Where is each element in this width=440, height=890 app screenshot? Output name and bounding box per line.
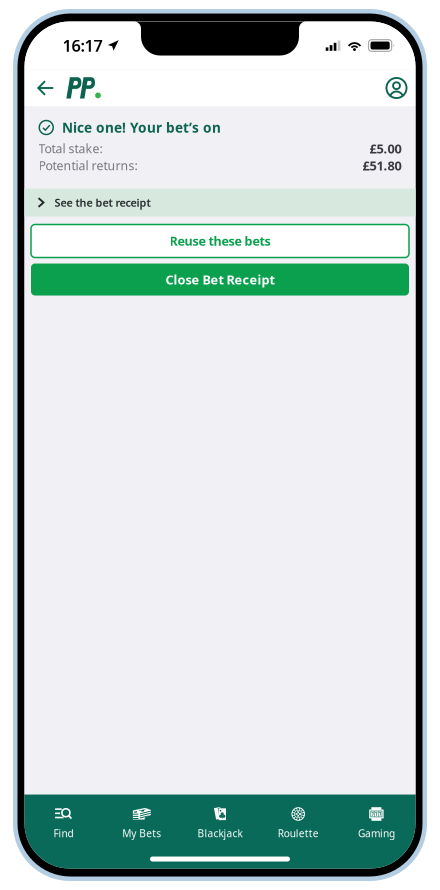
staticText: Potential returns: xyxy=(38,157,137,174)
staticText: Nice one! Your bet’s on xyxy=(62,118,221,137)
button[interactable]: See the bet receipt xyxy=(24,188,415,216)
button[interactable]: Reuse these bets xyxy=(31,224,409,257)
staticText: Close Bet Receipt xyxy=(165,271,274,288)
staticText: 16:17 xyxy=(62,34,102,57)
staticText: See the bet receipt xyxy=(54,195,150,210)
staticText: Reuse these bets xyxy=(169,232,270,250)
staticText: Find xyxy=(54,826,74,840)
button[interactable]: Paddy Power home xyxy=(62,69,106,106)
staticText: Total stake: xyxy=(38,140,102,157)
button[interactable]: My Bets xyxy=(103,794,181,841)
staticText: My Bets xyxy=(122,826,161,840)
staticText: Blackjack xyxy=(197,826,242,840)
button[interactable]: Blackjack xyxy=(181,794,259,841)
button[interactable]: Roulette xyxy=(259,794,337,841)
staticText: Roulette xyxy=(278,826,319,840)
staticText: £51.80 xyxy=(362,157,401,174)
staticText: £5.00 xyxy=(369,140,401,157)
button[interactable]: Close Bet Receipt xyxy=(31,263,409,295)
button[interactable]: Find xyxy=(24,794,103,841)
staticText: Gaming xyxy=(358,826,395,840)
button[interactable]: Account xyxy=(379,69,413,106)
button[interactable]: Gaming xyxy=(337,794,415,841)
button[interactable]: Back xyxy=(28,69,62,106)
